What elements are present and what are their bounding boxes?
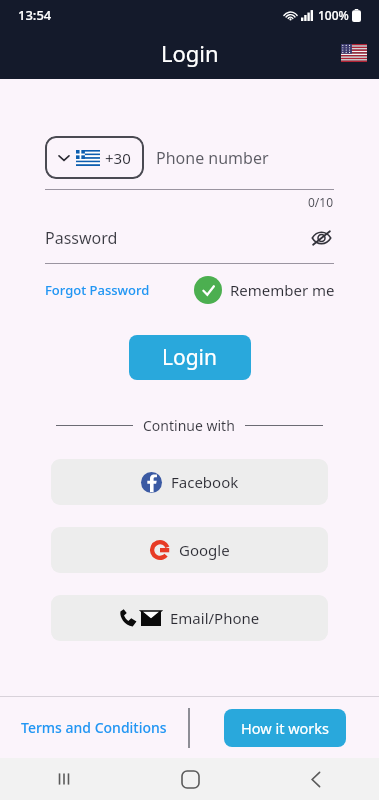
button[interactable]: Forgot Password	[45, 281, 150, 299]
button[interactable]: Home	[127, 758, 253, 800]
staticText: Login	[162, 343, 218, 372]
staticText: 100%	[318, 7, 349, 23]
staticText: Password	[45, 227, 118, 249]
staticText: Email/Phone	[170, 608, 260, 628]
button[interactable]: Login	[129, 335, 251, 380]
staticText: 0/10	[308, 194, 334, 210]
button[interactable]: Recents	[0, 758, 127, 800]
staticText: Facebook	[171, 472, 239, 492]
staticText: Continue with	[143, 416, 235, 435]
staticText: Forgot Password	[45, 281, 150, 299]
staticText: Phone number	[156, 147, 269, 169]
staticText: +30	[105, 148, 131, 168]
button[interactable]: Change language	[341, 44, 367, 62]
staticText: How it works	[241, 718, 329, 738]
staticText: 13:54	[18, 6, 52, 24]
staticText: Remember me	[230, 280, 335, 300]
staticText: Terms and Conditions	[21, 718, 167, 737]
button[interactable]: Back	[253, 758, 379, 800]
button[interactable]: How it works	[224, 709, 346, 747]
button[interactable]: +30	[45, 136, 144, 179]
button[interactable]: Remember me	[194, 276, 335, 304]
button[interactable]: Email/Phone	[51, 595, 328, 641]
staticText: Login	[161, 38, 219, 68]
staticText: Google	[179, 540, 230, 560]
button[interactable]: Facebook	[51, 459, 328, 505]
button[interactable]: Show password	[308, 225, 334, 251]
button[interactable]: Google	[51, 527, 328, 573]
button[interactable]: Terms and Conditions	[21, 718, 167, 737]
